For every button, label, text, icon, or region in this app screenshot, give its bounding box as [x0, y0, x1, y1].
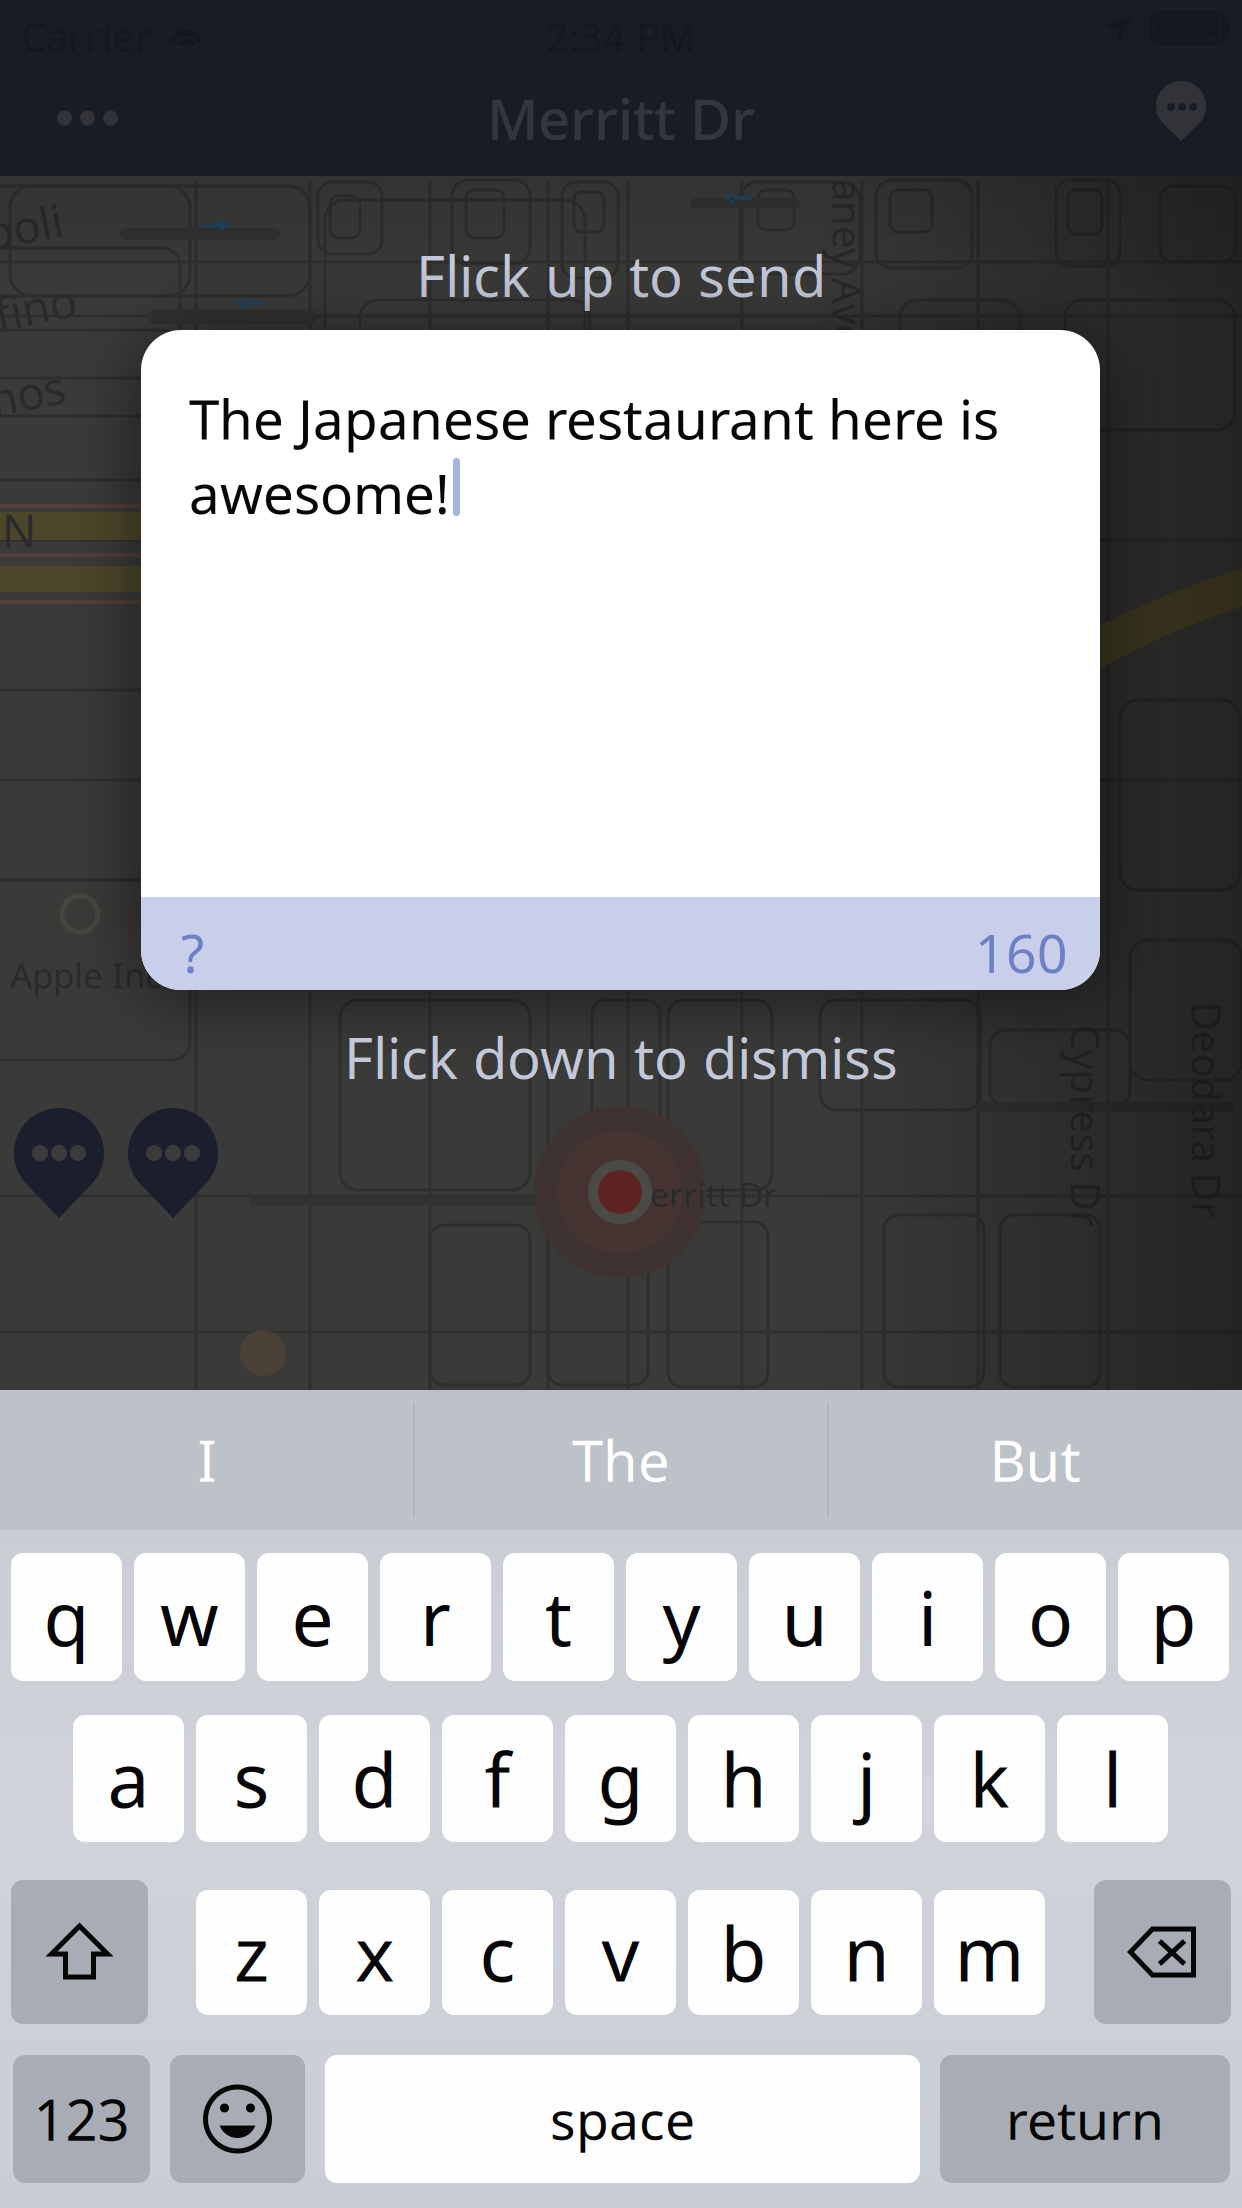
staticText: Flick up to send [416, 238, 826, 312]
staticText: Cypress Dr [984, 1099, 1187, 1152]
button[interactable]: g [565, 1715, 676, 1842]
button[interactable]: v [565, 1890, 676, 2015]
button[interactable]: f [442, 1715, 553, 1842]
staticText: Apple Inc. [10, 952, 171, 998]
staticText: o [1028, 1567, 1073, 1667]
staticText: Merritt Dr [487, 81, 755, 155]
button[interactable]: Drop a pin [1074, 60, 1242, 176]
staticText: r [420, 1567, 451, 1667]
staticText: u [781, 1567, 827, 1667]
staticText: erritt Dr [650, 1172, 777, 1216]
staticText: t [545, 1567, 572, 1667]
staticText: 123 [33, 2082, 129, 2156]
staticText: awesome! [189, 457, 450, 529]
staticText: j [857, 1729, 876, 1828]
button[interactable]: n [811, 1890, 922, 2015]
staticText: v [601, 1903, 639, 2002]
button[interactable]: t [503, 1553, 614, 1681]
staticText: q [43, 1567, 89, 1667]
button[interactable]: q [11, 1553, 122, 1681]
staticText: I [197, 1423, 216, 1497]
staticText: e [291, 1567, 333, 1667]
staticText: d [351, 1729, 397, 1828]
staticText: w [160, 1567, 219, 1667]
staticText: l [1103, 1729, 1122, 1828]
staticText: z [234, 1903, 269, 2002]
button[interactable]: Shift [11, 1880, 148, 2024]
button[interactable]: c [442, 1890, 553, 2015]
staticText: y [662, 1567, 700, 1667]
staticText: x [355, 1903, 394, 2002]
staticText: s [233, 1729, 269, 1828]
staticText: a [107, 1729, 149, 1828]
staticText: mos [0, 364, 65, 424]
button[interactable]: j [811, 1715, 922, 1842]
button[interactable]: z [196, 1890, 307, 2015]
staticText: 160 [975, 917, 1068, 988]
staticText: But [989, 1423, 1080, 1497]
button[interactable]: a [73, 1715, 184, 1842]
staticText: k [969, 1729, 1009, 1828]
staticText: The Japanese restaurant here is [189, 382, 999, 455]
button[interactable]: space [325, 2055, 920, 2183]
staticText: p [1150, 1567, 1196, 1667]
button[interactable]: Delete [1094, 1880, 1231, 2024]
button[interactable]: Conversations [0, 60, 175, 176]
staticText: laney Ave [759, 231, 937, 284]
button[interactable]: l [1057, 1715, 1168, 1842]
button[interactable]: But [828, 1390, 1242, 1530]
button[interactable]: The [414, 1390, 828, 1530]
staticText: i [918, 1567, 937, 1667]
staticText: g [597, 1729, 643, 1828]
button[interactable]: b [688, 1890, 799, 2015]
button[interactable]: Emoji [170, 2055, 305, 2183]
button[interactable]: w [134, 1553, 245, 1681]
staticText: m [954, 1903, 1024, 2002]
staticText: poli [0, 196, 63, 256]
staticText: N [2, 500, 36, 560]
button[interactable]: k [934, 1715, 1045, 1842]
button[interactable]: x [319, 1890, 430, 2015]
staticText: ofino [0, 279, 76, 339]
staticText: n [843, 1903, 889, 2002]
button[interactable]: o [995, 1553, 1106, 1681]
button[interactable]: y [626, 1553, 737, 1681]
staticText: Flick down to dismiss [344, 1020, 898, 1094]
staticText: h [720, 1729, 766, 1828]
staticText: return [1006, 2084, 1164, 2154]
button[interactable]: d [319, 1715, 430, 1842]
button[interactable]: m [934, 1890, 1045, 2015]
button[interactable]: I [0, 1390, 414, 1530]
button[interactable]: 123 [13, 2055, 150, 2183]
staticText: ? [181, 917, 204, 988]
staticText: The [572, 1423, 670, 1497]
staticText: space [550, 2084, 695, 2154]
staticText: b [720, 1903, 766, 2002]
button[interactable]: u [749, 1553, 860, 1681]
staticText: c [479, 1903, 515, 2002]
button[interactable]: h [688, 1715, 799, 1842]
staticText: f [484, 1729, 510, 1828]
button[interactable]: return [940, 2055, 1230, 2183]
button[interactable]: i [872, 1553, 983, 1681]
staticText: Deodara Dr [1098, 1083, 1242, 1136]
button[interactable]: e [257, 1553, 368, 1681]
button[interactable]: r [380, 1553, 491, 1681]
button[interactable]: s [196, 1715, 307, 1842]
button[interactable]: p [1118, 1553, 1229, 1681]
